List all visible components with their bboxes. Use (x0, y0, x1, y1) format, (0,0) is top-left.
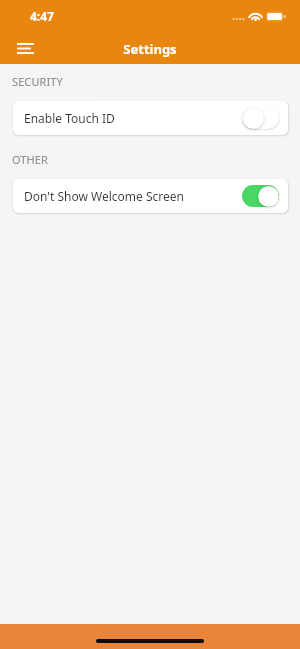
staticText: Enable Touch ID (24, 110, 115, 126)
button[interactable]: Don't Show Welcome Screen, on (242, 185, 279, 207)
button[interactable]: Enable Touch ID, off (242, 107, 279, 129)
staticText: 4:47 (30, 8, 54, 24)
button[interactable]: Don't Show Welcome Screen (13, 179, 288, 213)
staticText: Settings (123, 40, 177, 58)
button[interactable]: Open navigation menu (9, 32, 41, 64)
staticText: OTHER (12, 152, 48, 167)
staticText: Don't Show Welcome Screen (24, 188, 184, 204)
button[interactable]: Enable Touch ID (13, 101, 288, 135)
staticText: SECURITY (12, 74, 63, 89)
